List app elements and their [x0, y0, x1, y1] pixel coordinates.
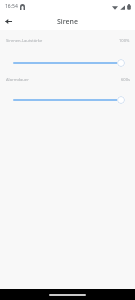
- button[interactable]: Sirenen-Lautstärke: [0, 34, 135, 69]
- button[interactable]: Back: [0, 13, 17, 30]
- button[interactable]: Alarmdauer: [0, 73, 135, 106]
- staticText: 16:54: [5, 3, 18, 10]
- staticText: Sirene: [57, 17, 78, 27]
- staticText: Alarmdauer: [6, 77, 29, 83]
- staticText: Sirenen-Lautstärke: [6, 38, 43, 44]
- staticText: 600s: [121, 77, 130, 83]
- staticText: 100%: [119, 38, 130, 44]
